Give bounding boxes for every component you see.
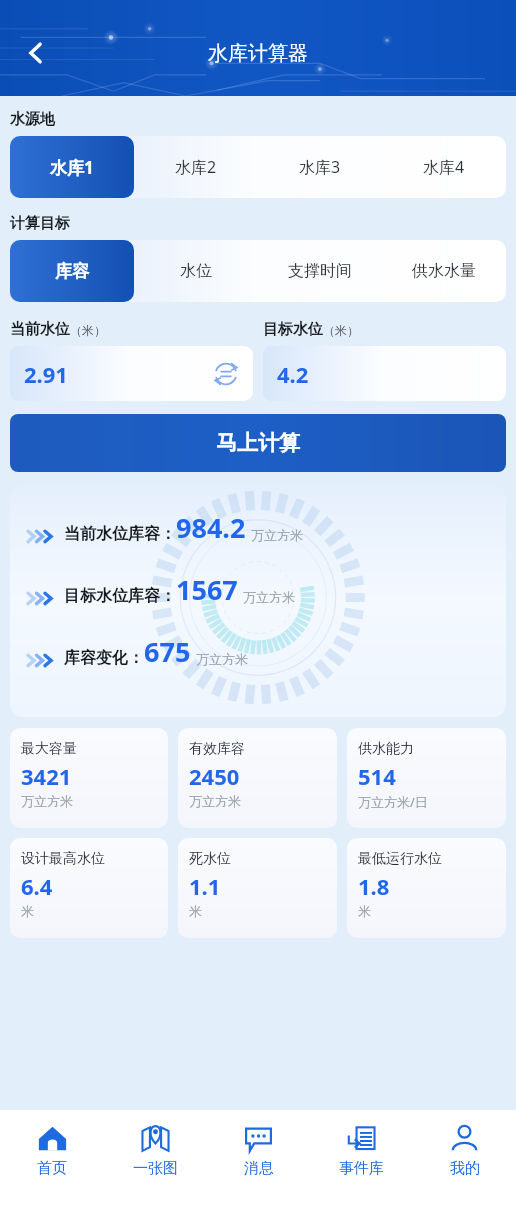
- button[interactable]: 事件库: [310, 1110, 413, 1206]
- staticText: 万立方米: [189, 793, 241, 809]
- staticText: 目标水位: [263, 320, 323, 339]
- staticText: 供水水量: [412, 261, 476, 281]
- button[interactable]: 水库1: [10, 136, 134, 198]
- staticText: 514: [358, 761, 396, 791]
- staticText: 最大容量: [21, 740, 77, 758]
- button[interactable]: 首页: [0, 1110, 104, 1206]
- staticText: 计算目标: [10, 214, 70, 233]
- staticText: （米）: [70, 323, 106, 338]
- staticText: 首页: [37, 1159, 67, 1178]
- staticText: 设计最高水位: [21, 850, 105, 868]
- button[interactable]: 水库3: [258, 136, 382, 198]
- button[interactable]: 最低运行水位: [347, 838, 506, 938]
- button[interactable]: 4.2: [263, 346, 506, 401]
- button[interactable]: 水位: [134, 240, 258, 302]
- staticText: 有效库容: [189, 740, 245, 758]
- staticText: 水源地: [10, 110, 55, 129]
- staticText: 最低运行水位: [358, 850, 442, 868]
- button[interactable]: 供水水量: [382, 240, 506, 302]
- staticText: 1567: [176, 571, 238, 608]
- staticText: 当前水位库容：: [64, 524, 176, 544]
- button[interactable]: 最大容量: [10, 728, 168, 828]
- button[interactable]: 水库2: [134, 136, 258, 198]
- staticText: 万立方米/日: [358, 793, 428, 811]
- staticText: （米）: [323, 323, 359, 338]
- staticText: 2450: [189, 761, 240, 791]
- staticText: 984.2: [176, 509, 246, 546]
- staticText: 当前水位: [10, 320, 70, 339]
- button[interactable]: 设计最高水位: [10, 838, 168, 938]
- staticText: 马上计算: [216, 430, 300, 456]
- button[interactable]: 水库4: [382, 136, 506, 198]
- staticText: 目标水位库容：: [64, 586, 176, 606]
- staticText: 消息: [244, 1159, 274, 1178]
- staticText: 我的: [450, 1159, 480, 1178]
- staticText: 库容: [55, 261, 89, 282]
- staticText: 万立方米: [251, 527, 303, 543]
- staticText: 支撑时间: [288, 261, 352, 281]
- staticText: 1.8: [358, 871, 390, 901]
- staticText: 675: [144, 633, 191, 670]
- staticText: 水位: [180, 261, 212, 281]
- button[interactable]: Back: [12, 29, 60, 77]
- staticText: 事件库: [339, 1159, 384, 1178]
- staticText: 水库3: [299, 156, 341, 178]
- staticText: 万立方米: [21, 793, 73, 809]
- staticText: 6.4: [21, 871, 53, 901]
- staticText: 水库2: [175, 156, 217, 178]
- button[interactable]: Swap values: [213, 361, 239, 387]
- staticText: 万立方米: [243, 589, 295, 605]
- staticText: 2.91: [24, 359, 68, 389]
- button[interactable]: 马上计算: [10, 414, 506, 472]
- button[interactable]: 2.91: [10, 346, 253, 401]
- staticText: 库容变化：: [64, 648, 144, 668]
- button[interactable]: 供水能力: [347, 728, 506, 828]
- staticText: 一张图: [133, 1159, 178, 1178]
- button[interactable]: 我的: [413, 1110, 516, 1206]
- staticText: 3421: [21, 761, 72, 791]
- button[interactable]: 有效库容: [178, 728, 337, 828]
- staticText: 水库1: [50, 156, 94, 179]
- button[interactable]: 消息: [207, 1110, 310, 1206]
- staticText: 水库4: [423, 156, 465, 178]
- staticText: 米: [358, 903, 371, 919]
- button[interactable]: 支撑时间: [258, 240, 382, 302]
- staticText: 米: [189, 903, 202, 919]
- staticText: 4.2: [277, 359, 309, 389]
- staticText: 1.1: [189, 871, 221, 901]
- staticText: 供水能力: [358, 740, 414, 758]
- staticText: 万立方米: [196, 651, 248, 667]
- button[interactable]: 一张图: [104, 1110, 207, 1206]
- button[interactable]: 死水位: [178, 838, 337, 938]
- staticText: 死水位: [189, 850, 231, 868]
- staticText: 米: [21, 903, 34, 919]
- staticText: 水库计算器: [208, 41, 308, 66]
- button[interactable]: 库容: [10, 240, 134, 302]
